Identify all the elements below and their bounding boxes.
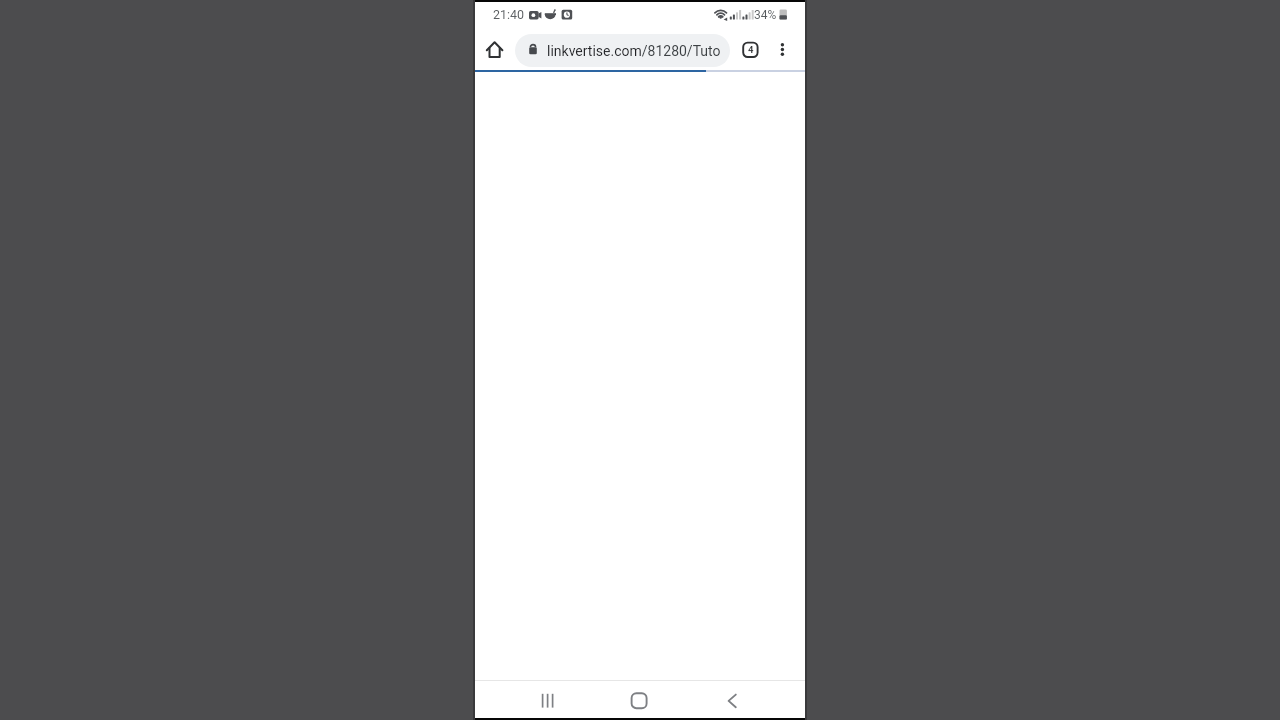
staticText: 4 [748,44,754,55]
staticText: 21:40 [493,7,525,22]
button[interactable] [585,682,695,720]
button[interactable] [770,38,794,62]
button[interactable]: 4 [741,40,760,59]
staticText: 34% [754,8,777,22]
button[interactable] [695,682,805,720]
button[interactable]: linkvertise.com/81280/Tuto [515,34,730,67]
button[interactable] [475,682,585,720]
staticText: linkvertise.com/81280/Tuto [547,43,721,59]
button[interactable] [479,34,511,66]
